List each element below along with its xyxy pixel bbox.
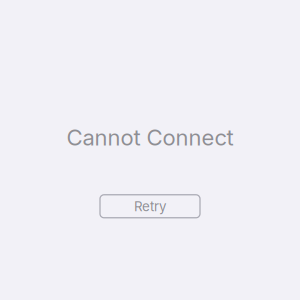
button[interactable]: Retry <box>100 195 200 218</box>
staticText: Cannot Connect <box>66 124 233 151</box>
staticText: Retry <box>134 198 166 214</box>
